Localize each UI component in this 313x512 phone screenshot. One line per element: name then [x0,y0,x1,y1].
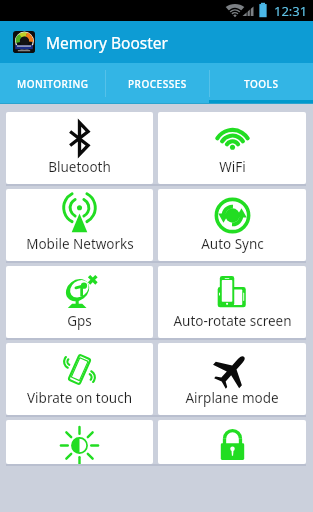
staticText: TOOLS [244,77,279,91]
button[interactable]: TOOLS [209,63,313,104]
staticText: Mobile Networks [26,235,134,253]
staticText: Gps [67,312,92,330]
button[interactable]: Auto-rotate screen [158,266,306,338]
button[interactable]: PROCESSES [105,63,209,104]
staticText: 12:31 [274,2,308,20]
staticText: WiFi [219,158,246,176]
button[interactable]: Vibrate on touch [6,343,153,415]
staticText: Auto-rotate screen [173,312,292,330]
staticText: PROCESSES [128,77,187,91]
staticText: Airplane mode [185,389,279,407]
button[interactable]: Auto Sync [158,189,306,261]
button[interactable]: WiFi [158,112,306,184]
button[interactable]: Airplane mode [158,343,306,415]
button[interactable]: Screen lock [158,420,306,464]
staticText: MONITORING [17,77,89,91]
staticText: Bluetooth [48,158,111,176]
button[interactable]: Gps [6,266,153,338]
staticText: Vibrate on touch [27,389,132,407]
button[interactable]: Mobile Networks [6,189,153,261]
button[interactable]: Brightness [6,420,153,464]
button[interactable]: Bluetooth [6,112,153,184]
staticText: Auto Sync [201,235,264,253]
button[interactable]: MONITORING [0,63,105,104]
staticText: Memory Booster [46,32,169,53]
